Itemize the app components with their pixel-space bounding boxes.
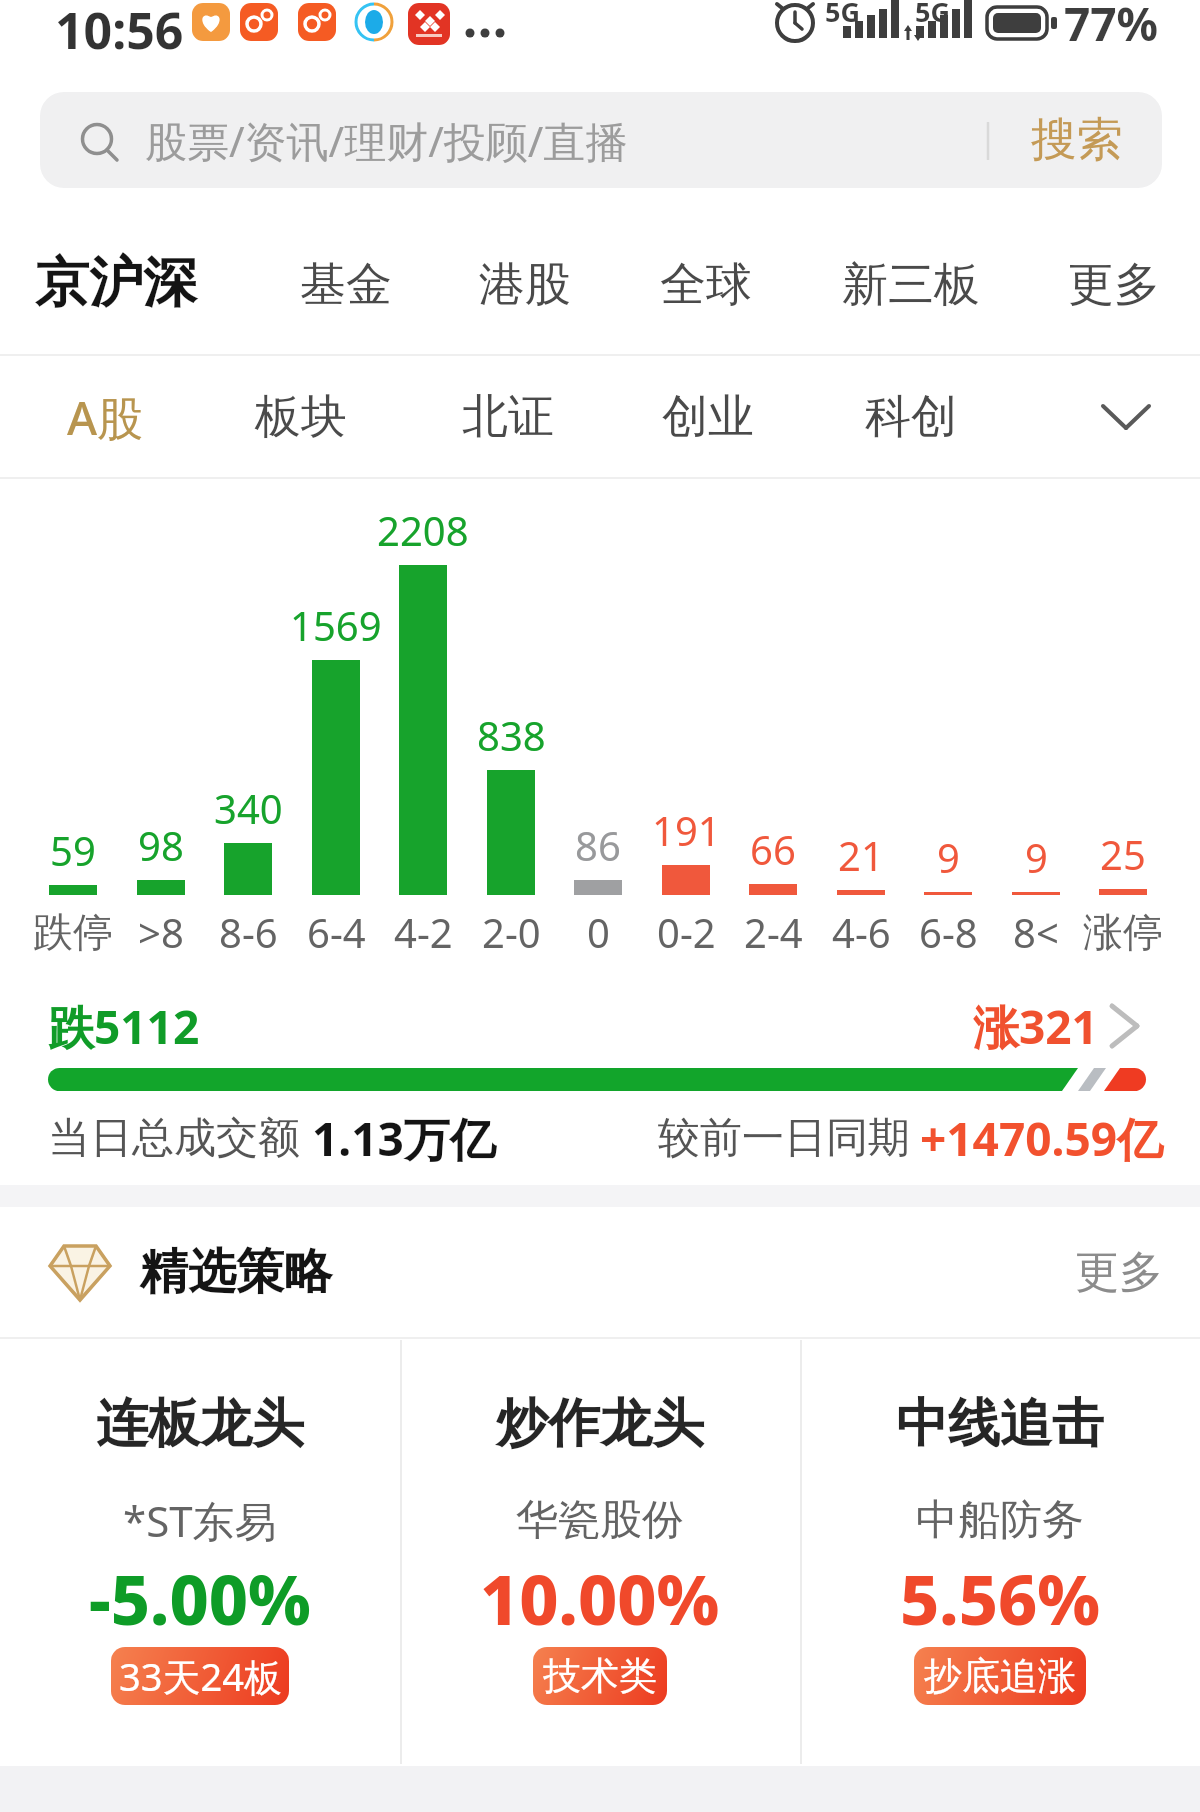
button[interactable] xyxy=(0,1340,400,1764)
button[interactable]: 板块 xyxy=(211,372,391,462)
staticText: 33天24板 xyxy=(119,1650,282,1702)
button[interactable]: 港股 xyxy=(435,240,615,330)
staticText: 较前一日同期 xyxy=(658,1112,910,1165)
staticText: 5G xyxy=(825,0,860,30)
staticText: 1569 xyxy=(290,598,382,652)
staticText: 5.56% xyxy=(900,1552,1101,1642)
button[interactable] xyxy=(800,1340,1200,1764)
button[interactable]: 北证 xyxy=(418,372,598,462)
staticText: 8< xyxy=(1013,905,1059,959)
staticText: >8 xyxy=(138,905,184,959)
staticText: 搜索 xyxy=(1031,111,1123,169)
button[interactable] xyxy=(40,92,1162,188)
staticText: 6-8 xyxy=(919,905,978,959)
staticText: 0-2 xyxy=(657,905,716,959)
button[interactable]: A股 xyxy=(25,372,185,462)
button[interactable]: 更多 xyxy=(963,1227,1163,1317)
staticText: 9 xyxy=(1025,830,1048,884)
staticText: 华瓷股份 xyxy=(516,1494,684,1547)
button[interactable]: 抄底追涨 xyxy=(914,1647,1086,1705)
staticText: 66 xyxy=(750,822,796,876)
staticText: 21 xyxy=(838,828,884,882)
staticText: 4-6 xyxy=(832,905,891,959)
staticText: 港股 xyxy=(479,256,571,314)
staticText: 更多 xyxy=(1075,1245,1163,1300)
staticText: 77% xyxy=(1064,0,1159,55)
staticText: 0 xyxy=(587,905,610,959)
staticText: 涨321 xyxy=(973,995,1098,1058)
staticText: 9 xyxy=(937,830,960,884)
staticText: 更多 xyxy=(1068,256,1160,314)
staticText: 10.00% xyxy=(480,1552,720,1642)
button[interactable] xyxy=(400,1340,800,1764)
button[interactable]: 搜索 xyxy=(1017,95,1137,185)
staticText: *ST东易 xyxy=(123,1492,277,1549)
staticText: 连板龙头 xyxy=(96,1391,304,1457)
staticText: 4-2 xyxy=(394,905,453,959)
staticText: 板块 xyxy=(255,388,347,446)
staticText: 抄底追涨 xyxy=(924,1652,1076,1700)
staticText: 2-0 xyxy=(482,905,541,959)
staticText: 跌停 xyxy=(33,907,113,957)
staticText: 6-4 xyxy=(307,905,366,959)
button[interactable]: 科创 xyxy=(821,372,1001,462)
staticText: 科创 xyxy=(865,388,957,446)
staticText: 838 xyxy=(477,708,546,762)
staticText: 340 xyxy=(214,781,283,835)
staticText: 北证 xyxy=(462,388,554,446)
button[interactable]: 创业 xyxy=(618,372,798,462)
staticText: 1.13万亿 xyxy=(312,1107,496,1170)
staticText: 10:56 xyxy=(55,0,184,64)
staticText: 191 xyxy=(652,803,721,857)
staticText: 当日总成交额 xyxy=(48,1112,300,1165)
button[interactable]: 涨321 xyxy=(798,981,1098,1071)
button[interactable]: 新三板 xyxy=(811,240,1011,330)
staticText: 创业 xyxy=(662,388,754,446)
staticText: +1470.59亿 xyxy=(920,1107,1164,1170)
staticText: 8-6 xyxy=(219,905,278,959)
staticText: 59 xyxy=(50,823,96,877)
staticText: 京沪深 xyxy=(35,249,197,317)
staticText: 86 xyxy=(575,818,621,872)
staticText: 2-4 xyxy=(744,905,803,959)
staticText: 2208 xyxy=(377,503,469,557)
button[interactable]: 技术类 xyxy=(533,1647,667,1705)
button[interactable]: 33天24板 xyxy=(111,1647,289,1705)
staticText: 中线追击 xyxy=(896,1391,1104,1457)
staticText: A股 xyxy=(67,386,144,449)
staticText: -5.00% xyxy=(89,1552,311,1642)
staticText: 精选策略 xyxy=(140,1242,332,1302)
staticText: 跌5112 xyxy=(48,995,200,1058)
staticText: 5G xyxy=(915,0,950,30)
button[interactable]: 更多 xyxy=(1034,240,1194,330)
staticText: 98 xyxy=(138,818,184,872)
staticText: 新三板 xyxy=(842,256,980,314)
button[interactable]: 京沪深 xyxy=(35,238,675,328)
button[interactable]: 基金 xyxy=(256,240,436,330)
staticText: 技术类 xyxy=(543,1652,657,1700)
staticText: 股票/资讯/理财/投顾/直播 xyxy=(145,112,628,169)
staticText: 炒作龙头 xyxy=(496,1391,704,1457)
staticText: 中船防务 xyxy=(916,1494,1084,1547)
staticText: 基金 xyxy=(300,256,392,314)
staticText: 25 xyxy=(1100,827,1146,881)
button[interactable]: 全球 xyxy=(616,240,796,330)
staticText: 涨停 xyxy=(1083,907,1163,957)
staticText: 全球 xyxy=(660,256,752,314)
